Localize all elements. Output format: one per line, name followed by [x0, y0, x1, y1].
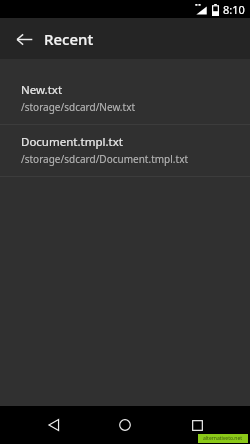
button[interactable]: Home: [107, 407, 143, 443]
button[interactable]: Back: [36, 407, 72, 443]
staticText: Recent: [44, 29, 94, 49]
button[interactable]: Back: [8, 23, 40, 55]
staticText: New.txt: [21, 82, 63, 98]
staticText: 8:10: [223, 2, 245, 17]
staticText: Document.tmpl.txt: [21, 134, 123, 150]
staticText: /storage/sdcard/Document.tmpl.txt: [21, 152, 189, 166]
button[interactable]: Recents: [179, 407, 215, 443]
staticText: /storage/sdcard/New.txt: [21, 100, 136, 114]
button[interactable]: New.txt: [0, 73, 250, 124]
button[interactable]: Document.tmpl.txt: [0, 125, 250, 176]
staticText: alternativeto.net: [203, 435, 243, 442]
